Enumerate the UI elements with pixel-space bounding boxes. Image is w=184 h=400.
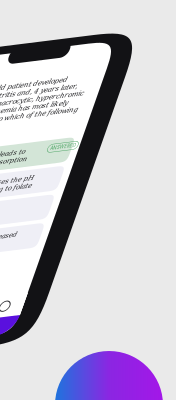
staticText: A 62-year-old patient developed atrophic… <box>0 94 117 146</box>
staticText: Red cell destruction is increased in an … <box>0 261 98 278</box>
button[interactable]: Search <box>9 333 50 357</box>
staticText: Gastric parietal cells are involved, so … <box>0 231 67 247</box>
button[interactable]: Red cell destruction is increased in an … <box>0 256 125 283</box>
button[interactable]: Home <box>0 333 9 357</box>
button[interactable]: Atrophic gastritis raises the pH in the … <box>0 195 125 222</box>
staticText: CORRECT <box>0 153 7 161</box>
button[interactable]: Study <box>50 333 92 357</box>
staticText: Atrophic gastritis leads to vitamin B12 … <box>0 169 79 186</box>
button[interactable]: Atrophic gastritis leads to vitamin B12 … <box>0 164 125 191</box>
button[interactable]: Gastric parietal cells are involved, so … <box>0 226 125 252</box>
button[interactable]: Profile <box>92 333 133 357</box>
staticText: Atrophic gastritis raises the pH in the … <box>0 200 95 217</box>
